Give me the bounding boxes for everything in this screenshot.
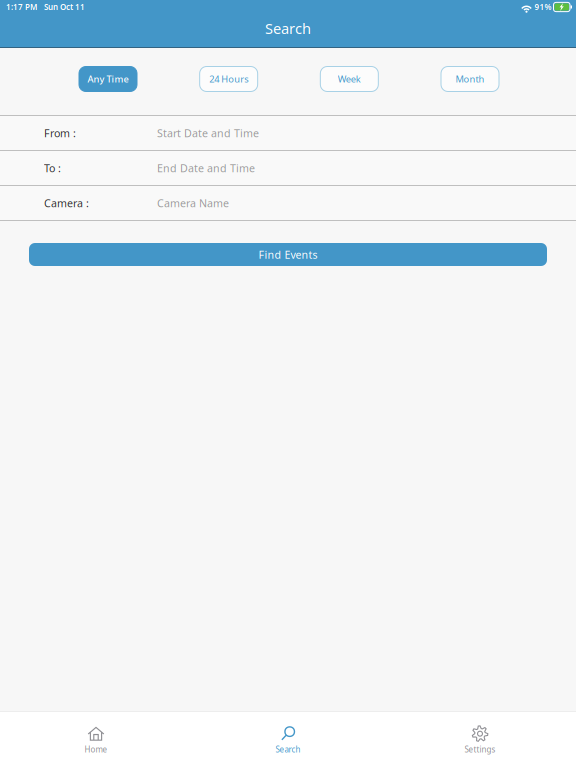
button[interactable]: Any Time [79,66,137,91]
staticText: Camera : [44,196,89,210]
staticText: Search [265,18,311,38]
staticText: Month [455,73,484,85]
staticText: Settings [464,744,495,755]
staticText: Camera Name [157,196,229,210]
button[interactable]: Month [441,66,499,91]
staticText: Home [84,744,107,755]
button[interactable]: To : [0,151,576,185]
staticText: Week [338,73,361,85]
button[interactable]: Week [320,66,378,91]
button[interactable]: Camera : [0,186,576,220]
staticText: To : [44,161,61,175]
staticText: Any Time [87,73,128,85]
staticText: 24 Hours [209,73,248,85]
button[interactable]: Search [192,712,384,768]
staticText: From : [44,126,76,140]
button[interactable]: From : [0,116,576,150]
button[interactable]: Settings [384,712,576,768]
staticText: Sun Oct 11 [44,2,85,12]
staticText: 1:17 PM [6,2,37,12]
button[interactable]: Home [0,712,192,768]
staticText: Find Events [258,247,317,262]
button[interactable]: 24 Hours [200,66,258,91]
staticText: 91% [534,2,551,12]
staticText: Start Date and Time [157,126,259,140]
staticText: Search [275,744,300,755]
button[interactable]: Find Events [29,243,547,266]
staticText: End Date and Time [157,161,255,175]
